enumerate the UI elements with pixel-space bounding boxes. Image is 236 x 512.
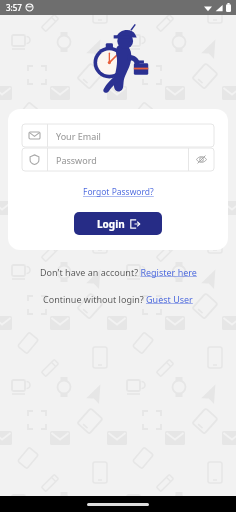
staticText: Password [56,154,188,166]
button[interactable]: Password [22,148,214,171]
button[interactable]: Login [74,212,162,235]
button[interactable]: Show password [189,148,214,171]
staticText: Your Email [56,130,214,142]
staticText: 3:57 [6,2,22,13]
staticText: Continue without login? Guest User [43,293,193,305]
button[interactable]: Don't have an account? Register here [38,264,199,280]
staticText: Login [97,217,125,231]
staticText: Don't have an account? Register here [40,266,197,278]
button[interactable]: Your Email [22,124,214,147]
button[interactable]: Continue without login? Guest User [41,291,195,307]
button[interactable]: Forgot Password? [81,184,156,200]
